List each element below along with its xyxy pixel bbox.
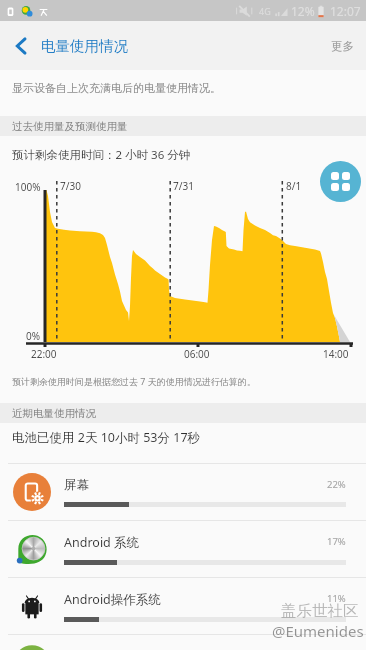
staticText: 显示设备自上次充满电后的电量使用情况。	[12, 81, 221, 95]
staticText: 22:00	[31, 347, 57, 361]
staticText: 电量使用情况	[41, 37, 128, 55]
staticText: 8/1	[286, 179, 302, 193]
staticText: 预计剩余使用时间：2 小时 36 分钟	[12, 147, 191, 163]
staticText: 预计剩余使用时间是根据您过去 7 天的使用情况进行估算的。	[12, 375, 256, 387]
staticText: 电池已使用 2天 10小时 53分 17秒	[12, 429, 201, 446]
staticText: 14:00	[323, 347, 349, 361]
button[interactable]: App list	[320, 161, 361, 202]
button[interactable]: Back	[5, 30, 37, 62]
staticText: 屏幕	[64, 477, 89, 493]
staticText: @Eumenides	[272, 621, 364, 641]
staticText: 7/30	[60, 179, 81, 193]
button[interactable]: 屏幕	[0, 463, 366, 520]
staticText: 12:07	[330, 3, 361, 19]
staticText: 11%	[327, 592, 346, 605]
staticText: 7/31	[173, 179, 194, 193]
button[interactable]: 更多	[319, 27, 366, 65]
staticText: 06:00	[184, 347, 210, 361]
staticText: 盖乐世社区	[281, 601, 359, 621]
staticText: 12%	[291, 3, 315, 19]
staticText: 更多	[331, 39, 354, 53]
staticText: 100%	[15, 180, 41, 194]
staticText: 4G	[259, 5, 271, 17]
button[interactable]: Android 系统	[0, 520, 366, 577]
staticText: 17%	[327, 535, 346, 548]
staticText: 0%	[26, 329, 41, 343]
button[interactable]: Chrome	[0, 634, 366, 650]
staticText: 22%	[327, 478, 346, 491]
staticText: 近期电量使用情况	[12, 407, 96, 420]
staticText: 过去使用量及预测使用量	[12, 120, 128, 133]
staticText: Android 系统	[64, 534, 140, 551]
staticText: Android操作系统	[64, 591, 161, 608]
button[interactable]: Android操作系统	[0, 577, 366, 634]
